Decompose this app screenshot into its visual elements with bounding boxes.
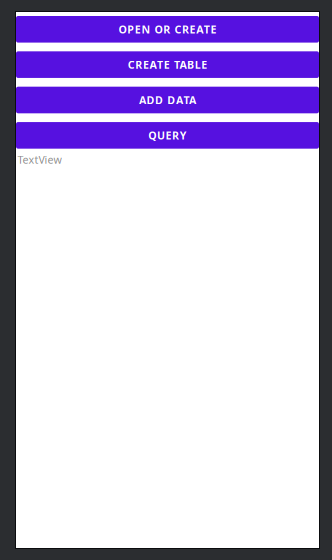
- staticText: OPEN OR CREATE: [119, 22, 216, 36]
- staticText: CREATE TABLE: [128, 58, 207, 72]
- staticText: ADD DATA: [139, 93, 196, 107]
- staticText: QUERY: [148, 128, 187, 142]
- button[interactable]: QUERY: [16, 122, 319, 149]
- button[interactable]: OPEN OR CREATE: [16, 16, 319, 43]
- staticText: TextView: [17, 153, 61, 167]
- button[interactable]: ADD DATA: [16, 87, 319, 113]
- button[interactable]: CREATE TABLE: [16, 51, 319, 78]
